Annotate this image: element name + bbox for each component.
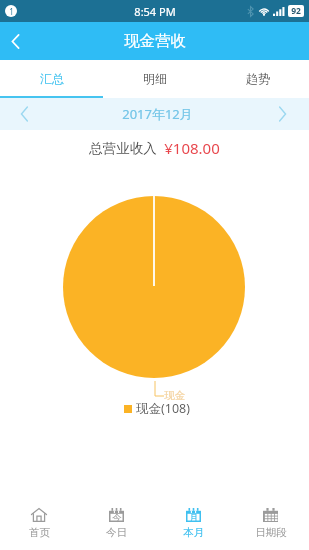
staticText: 日期段: [255, 526, 287, 539]
staticText: 月: [189, 512, 199, 524]
staticText: 汇总: [40, 71, 64, 86]
staticText: ¥108.00: [164, 138, 220, 158]
button[interactable]: 今: [78, 500, 155, 550]
button[interactable]: 趋势: [206, 60, 309, 98]
staticText: 现金营收: [124, 31, 186, 51]
button[interactable]: Back: [0, 22, 31, 60]
staticText: 92: [291, 5, 301, 17]
button[interactable]: Next month: [256, 98, 309, 130]
staticText: 首页: [29, 526, 50, 539]
staticText: 8:54 PM: [134, 4, 176, 19]
staticText: 现金(108): [136, 400, 190, 417]
staticText: 本月: [183, 526, 204, 539]
button[interactable]: 首页: [0, 500, 78, 550]
button[interactable]: 汇总: [0, 60, 103, 98]
button[interactable]: 月: [155, 500, 232, 550]
staticText: 明细: [143, 71, 167, 86]
button[interactable]: 日期段: [232, 500, 309, 550]
staticText: 2017年12月: [122, 105, 193, 123]
button[interactable]: 明细: [103, 60, 206, 98]
staticText: 今: [112, 512, 122, 524]
staticText: 今日: [106, 526, 127, 539]
staticText: 1: [9, 6, 14, 17]
button[interactable]: Previous month: [0, 98, 49, 130]
staticText: 现金: [164, 389, 185, 402]
staticText: 趋势: [246, 71, 270, 86]
staticText: 总营业收入: [89, 140, 157, 157]
